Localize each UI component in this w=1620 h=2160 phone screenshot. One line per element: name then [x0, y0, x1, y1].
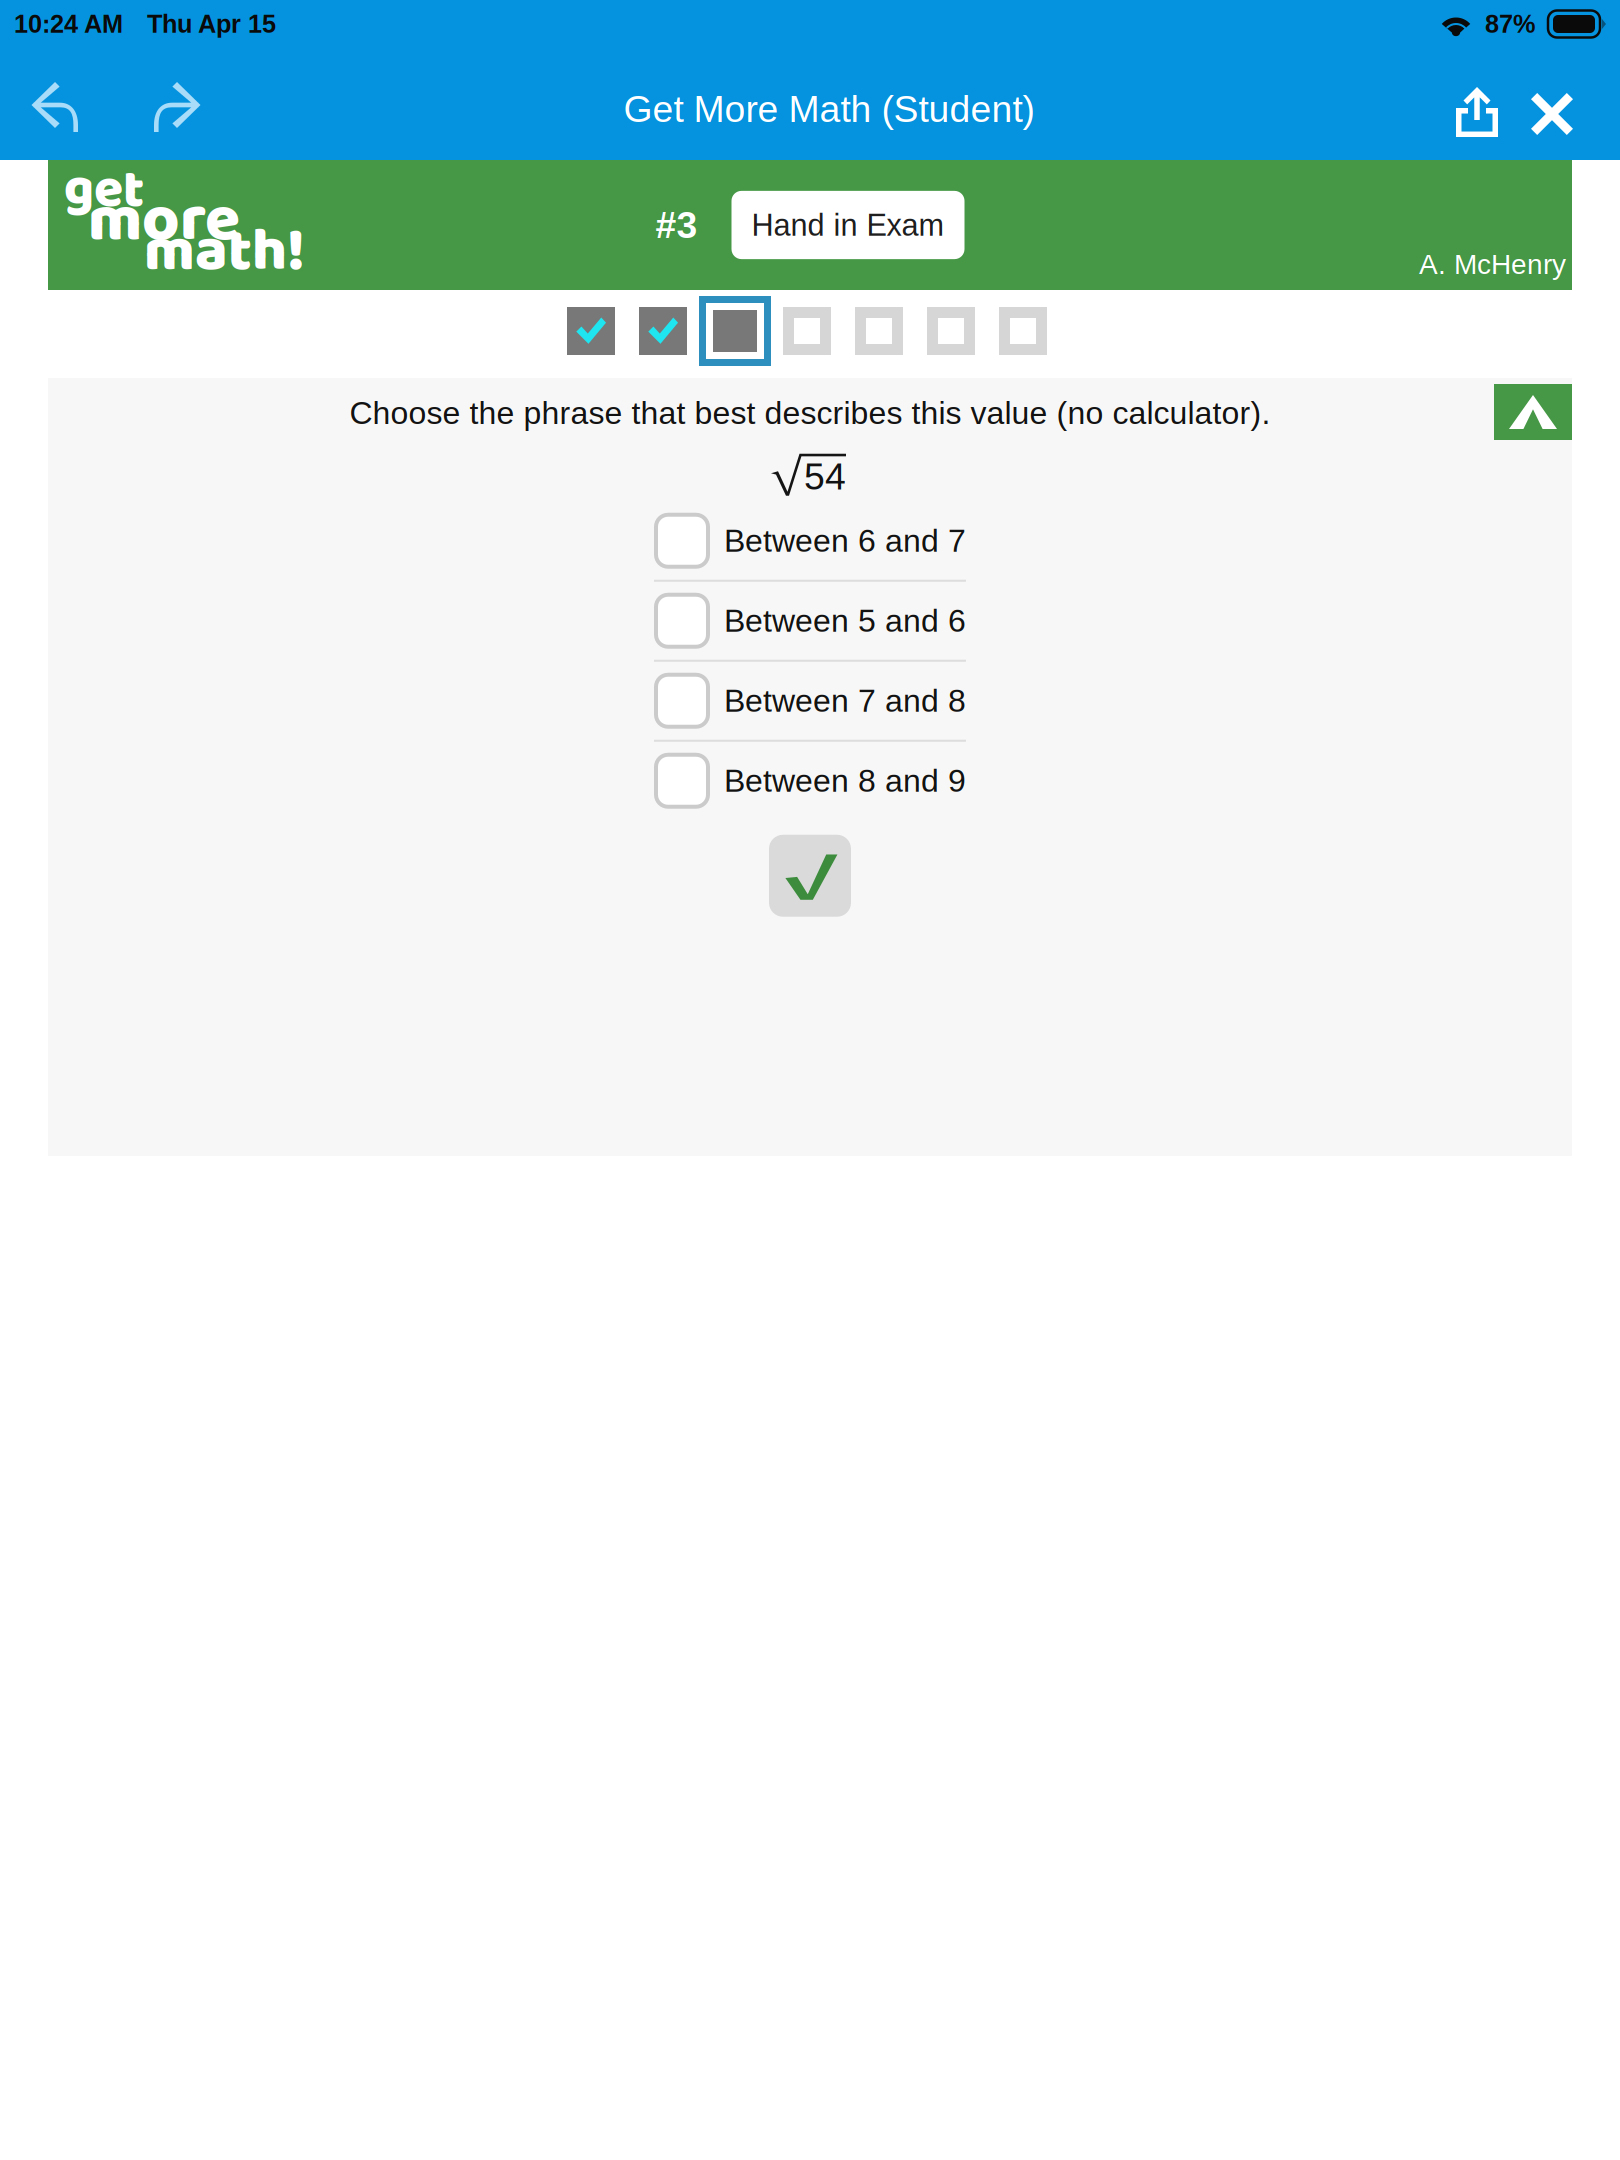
button[interactable]: Close	[1516, 48, 1588, 160]
staticText: 54	[804, 456, 846, 497]
button[interactable]: Between 6 and 7	[650, 502, 970, 580]
staticText: Hand in Exam	[751, 208, 944, 242]
staticText: math!	[144, 204, 305, 300]
staticText: Between 8 and 9	[724, 763, 966, 799]
button[interactable]: Forward	[116, 48, 232, 160]
staticText: Between 6 and 7	[724, 523, 966, 559]
staticText: get	[64, 148, 144, 233]
staticText: A. McHenry	[1419, 249, 1566, 280]
staticText: 87%	[1485, 10, 1536, 38]
staticText: 10:24 AM	[14, 10, 123, 38]
button[interactable]: Collapse	[1494, 384, 1572, 440]
button[interactable]: Between 7 and 8	[650, 662, 970, 740]
button[interactable]: Share	[1438, 48, 1516, 160]
button[interactable]: Between 8 and 9	[650, 742, 970, 820]
button[interactable]: Back	[0, 48, 116, 160]
button[interactable]	[769, 835, 851, 917]
staticText: Get More Math (Student)	[623, 88, 1034, 130]
staticText: Between 5 and 6	[724, 603, 966, 639]
button[interactable]: Hand in Exam	[731, 191, 964, 259]
staticText: Thu Apr 15	[147, 10, 276, 38]
staticText: Choose the phrase that best describes th…	[349, 395, 1270, 431]
staticText: #3	[655, 204, 697, 246]
button[interactable]: Between 5 and 6	[650, 582, 970, 660]
staticText: Between 7 and 8	[724, 683, 966, 719]
staticText: more	[88, 170, 240, 272]
